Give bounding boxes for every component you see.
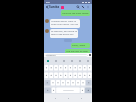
button[interactable]: Key <box>67 64 72 71</box>
button[interactable]: Key <box>50 86 56 94</box>
button[interactable]: Key <box>87 86 92 94</box>
button[interactable]: Key <box>44 64 48 71</box>
button[interactable]: Key <box>82 78 87 86</box>
button[interactable]: Key <box>48 71 52 78</box>
button[interactable]: Key <box>82 71 87 78</box>
button[interactable]: Key <box>52 71 57 78</box>
button[interactable]: Key <box>44 78 50 86</box>
button[interactable]: Nav <box>79 96 83 100</box>
button[interactable]: Key <box>72 86 77 94</box>
button[interactable]: Nav <box>53 96 57 100</box>
button[interactable]: Key <box>48 64 52 71</box>
button[interactable]: And the later an offer <box>65 49 90 54</box>
button[interactable]: Same, i want back <box>71 43 90 48</box>
button[interactable]: Key <box>72 64 77 71</box>
button[interactable]: Key <box>67 78 72 86</box>
button[interactable]: Key <box>62 64 67 71</box>
button[interactable]: Sunita <box>49 5 64 9</box>
button[interactable]: Key <box>77 71 82 78</box>
button[interactable]: Call <box>81 5 85 9</box>
button[interactable]: Back <box>45 5 49 9</box>
button[interactable]: Key <box>62 86 67 94</box>
button[interactable]: Key <box>82 86 87 94</box>
button[interactable]: Key <box>62 78 67 86</box>
button[interactable]: Key <box>50 78 56 86</box>
button[interactable]: Nav <box>66 96 70 100</box>
staticText: Sunita <box>49 5 60 9</box>
button[interactable]: Key <box>77 64 82 71</box>
button[interactable]: Clipboard <box>45 54 88 57</box>
button[interactable]: Key <box>57 64 62 71</box>
button[interactable]: Key <box>87 64 92 71</box>
staticText: Akhirnya yaa udah sampe ya <box>62 12 89 15</box>
button[interactable]: Key <box>87 78 92 86</box>
button[interactable]: More options <box>86 5 90 9</box>
button[interactable]: Key <box>56 78 62 86</box>
button[interactable]: Key <box>87 71 92 78</box>
button[interactable]: Key <box>72 78 77 86</box>
staticText: Same, i want back <box>72 44 89 47</box>
button[interactable]: Key <box>72 71 77 78</box>
button[interactable]: Key <box>82 64 87 71</box>
button[interactable]: ok makasih, aku going ya sabtu coba beso… <box>50 29 78 38</box>
button[interactable]: Key <box>56 86 62 94</box>
button[interactable]: Google <box>47 60 49 62</box>
button[interactable]: Key <box>77 86 82 94</box>
button[interactable]: Search <box>76 5 80 9</box>
button[interactable]: Key <box>62 71 67 78</box>
staticText: I bought goods. Went to order your Paytm… <box>51 20 79 27</box>
button[interactable]: Akhirnya yaa udah sampe ya <box>61 10 90 16</box>
button[interactable]: Key <box>52 64 57 71</box>
button[interactable]: Key <box>67 86 72 94</box>
staticText: ok makasih, aku going ya sabtu coba beso… <box>51 30 77 37</box>
button[interactable]: Key <box>67 71 72 78</box>
button[interactable]: Key <box>44 71 48 78</box>
staticText: Clipboard <box>46 54 56 57</box>
button[interactable]: Key <box>57 71 62 78</box>
button[interactable]: Key <box>77 78 82 86</box>
button[interactable]: Key <box>44 86 50 94</box>
staticText: And the later an offer <box>66 50 89 53</box>
button[interactable]: I bought goods. Went to order your Paytm… <box>50 19 80 28</box>
staticText: 9:41 <box>46 1 51 4</box>
